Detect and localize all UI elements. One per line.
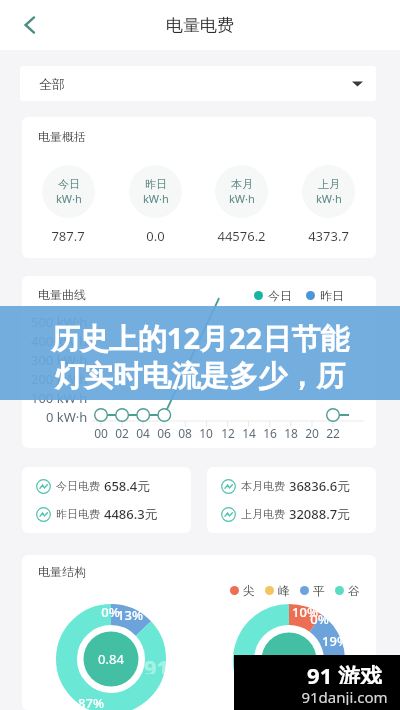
- button[interactable]: 谷: [335, 583, 360, 598]
- staticText: kW·h: [316, 191, 342, 206]
- button[interactable]: 上月电费: [221, 504, 351, 524]
- staticText: 18: [284, 425, 298, 441]
- staticText: 91游戏: [144, 652, 214, 674]
- button[interactable]: 本月电费: [221, 476, 351, 496]
- staticText: 全部: [39, 76, 65, 92]
- staticText: 200 kW·h: [31, 370, 88, 388]
- staticText: 谷: [348, 583, 360, 598]
- staticText: 300 kW·h: [31, 351, 88, 369]
- staticText: 电量结构: [38, 564, 86, 579]
- staticText: 电量电费: [166, 15, 234, 36]
- staticText: kW·h: [56, 191, 82, 206]
- staticText: kW·h: [143, 191, 169, 206]
- staticText: 787.7: [51, 227, 85, 245]
- staticText: 10: [199, 425, 213, 441]
- staticText: 91danji.com: [301, 687, 388, 705]
- staticText: 今日电费: [56, 479, 100, 493]
- staticText: 100 kW·h: [31, 389, 88, 407]
- staticText: 10%: [292, 603, 318, 621]
- staticText: 平: [313, 583, 325, 598]
- button[interactable]: 全部: [20, 66, 376, 101]
- staticText: 91 游戏: [307, 660, 382, 684]
- staticText: 36836.6元: [289, 477, 351, 495]
- staticText: 87%: [78, 694, 104, 710]
- staticText: 04: [136, 425, 150, 441]
- staticText: 14: [242, 425, 256, 441]
- staticText: 400 kW·h: [31, 332, 88, 350]
- button[interactable]: 今日电费: [36, 476, 151, 496]
- staticText: 昨日电费: [56, 507, 100, 521]
- staticText: 658.4元: [104, 477, 151, 495]
- button[interactable]: Back: [12, 7, 48, 43]
- staticText: 20: [305, 425, 319, 441]
- staticText: 今日: [268, 288, 292, 303]
- staticText: 22: [326, 425, 340, 441]
- staticText: 4486.3元: [104, 505, 158, 523]
- staticText: kW·h: [229, 191, 255, 206]
- staticText: 尖: [243, 583, 255, 598]
- button[interactable]: 尖: [230, 583, 255, 598]
- staticText: 00: [94, 425, 108, 441]
- staticText: 0.0: [146, 227, 165, 245]
- staticText: 本月电费: [241, 479, 285, 493]
- staticText: 昨日: [320, 288, 344, 303]
- button[interactable]: 平: [300, 583, 325, 598]
- staticText: 06: [157, 425, 171, 441]
- staticText: 19%: [322, 632, 348, 650]
- staticText: 0.84: [98, 650, 124, 668]
- staticText: 0%: [101, 603, 120, 621]
- staticText: 上月: [318, 177, 340, 191]
- staticText: 4373.7: [308, 227, 349, 245]
- staticText: 12: [221, 425, 235, 441]
- staticText: 历史上的12月22日节能 灯实时电流是多少，历: [0, 318, 400, 394]
- staticText: 08: [178, 425, 192, 441]
- staticText: 今日: [58, 177, 80, 191]
- staticText: 本月: [231, 177, 253, 191]
- staticText: 上月电费: [241, 507, 285, 521]
- staticText: 13%: [117, 606, 143, 624]
- staticText: 500 kW·h: [31, 313, 88, 331]
- staticText: 91danji.com: [186, 672, 246, 686]
- staticText: 0 kW·h: [46, 408, 88, 426]
- staticText: 电量曲线: [38, 287, 86, 302]
- staticText: 昨日: [145, 177, 167, 191]
- staticText: 32088.7元: [289, 505, 351, 523]
- staticText: 02: [115, 425, 129, 441]
- staticText: 0%: [310, 610, 329, 628]
- button[interactable]: 昨日电费: [36, 504, 158, 524]
- staticText: 16: [263, 425, 277, 441]
- button[interactable]: 峰: [265, 583, 290, 598]
- staticText: 峰: [278, 583, 290, 598]
- staticText: 44576.2: [217, 227, 266, 245]
- staticText: 电量概括: [38, 129, 86, 144]
